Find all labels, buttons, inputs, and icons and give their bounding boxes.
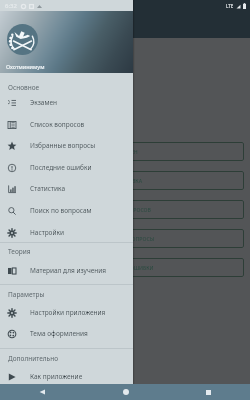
staticText: Последние ошибки [30, 163, 92, 172]
staticText: СПИСОК ВОПРОСОВ [99, 206, 151, 213]
staticText: Экзамен [30, 98, 58, 107]
staticText: Настройки [30, 228, 65, 237]
button[interactable]: СПИСОК ВОПРОСОВ [6, 200, 244, 219]
button[interactable]: ТРЕНИРОВКА [6, 171, 244, 190]
button[interactable]: Настройки приложения [0, 302, 133, 323]
button[interactable]: Статистика [0, 178, 133, 199]
button[interactable]: Back [0, 384, 84, 400]
staticText: LTE [226, 3, 234, 9]
staticText: 6:32 [5, 2, 17, 10]
staticText: ТРЕНИРОВКА [108, 177, 143, 184]
staticText: Основное [8, 83, 40, 92]
button[interactable]: Тема оформления [0, 323, 133, 344]
button[interactable]: ПОСЛЕДНИЕ ОШИБКИ [6, 258, 244, 277]
staticText: Дополнительно [8, 354, 58, 363]
button[interactable]: Поиск по вопросам [0, 200, 133, 221]
staticText: Тема оформления [30, 329, 88, 338]
staticText: ЭКЗАМЕН [113, 148, 138, 155]
staticText: ПОСЛЕДНИЕ ОШИБКИ [96, 264, 154, 271]
staticText: Параметры [8, 290, 45, 299]
staticText: Избранные вопросы [30, 141, 96, 150]
button[interactable]: Избранные вопросы [0, 135, 133, 156]
button[interactable]: Recents [167, 384, 250, 400]
button[interactable]: Настройки [0, 222, 133, 243]
button[interactable]: ИЗБРАННЫЕ ВОПРОСЫ [6, 229, 244, 248]
staticText: Поиск по вопросам [30, 206, 92, 215]
button[interactable]: Экзамен [0, 92, 133, 113]
staticText: Настройки приложения [30, 308, 106, 317]
button[interactable]: Последние ошибки [0, 157, 133, 178]
button[interactable]: Home [84, 384, 167, 400]
staticText: Теория [8, 247, 31, 256]
staticText: Статистика [30, 184, 65, 193]
staticText: Как приложение [30, 372, 83, 381]
staticText: Список вопросов [30, 120, 85, 129]
button[interactable]: ЭКЗАМЕН [6, 142, 244, 161]
button[interactable]: Список вопросов [0, 114, 133, 135]
button[interactable]: Как приложение [0, 366, 133, 387]
staticText: Охотминимум [6, 63, 45, 70]
button[interactable]: Материал для изучения [0, 260, 133, 281]
staticText: ИЗБРАННЫЕ ВОПРОСЫ [95, 235, 155, 242]
staticText: Материал для изучения [30, 266, 107, 275]
